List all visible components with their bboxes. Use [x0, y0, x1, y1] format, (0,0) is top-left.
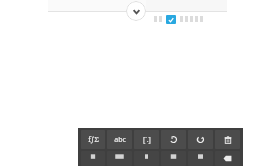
button[interactable]: Formula key [81, 151, 105, 166]
button[interactable]: Formula key [188, 130, 213, 149]
staticText: abc [114, 135, 126, 145]
button[interactable]: Collapse panel [126, 1, 146, 21]
button[interactable]: Formula key [134, 151, 159, 166]
button[interactable]: Formula key [188, 151, 213, 166]
button[interactable]: Toggle selection [166, 15, 176, 24]
staticText: f∫Σ [88, 135, 99, 145]
button[interactable] [48, 0, 227, 12]
button[interactable]: Formula key [107, 130, 132, 149]
button[interactable]: Formula key [81, 130, 105, 149]
button[interactable]: Formula key [134, 130, 159, 149]
button[interactable]: Formula key [215, 151, 240, 166]
staticText: [˙.] [143, 135, 151, 145]
button[interactable]: Formula key [161, 151, 186, 166]
button[interactable]: Formula key [107, 151, 132, 166]
button[interactable]: Formula key [215, 130, 240, 149]
button[interactable]: Formula key [161, 130, 186, 149]
